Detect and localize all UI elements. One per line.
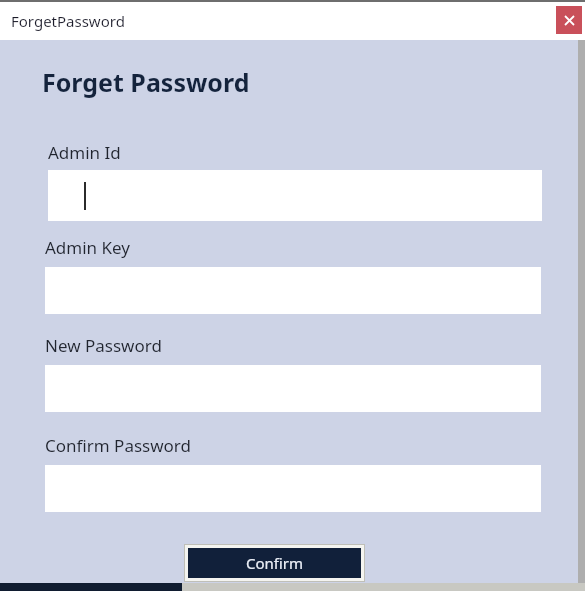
staticText: ForgetPassword (11, 11, 125, 31)
staticText: New Password (45, 334, 162, 357)
staticText: Confirm Password (45, 434, 191, 457)
staticText: Confirm (246, 553, 304, 573)
button[interactable]: Text input (48, 170, 542, 221)
staticText: Admin Id (48, 141, 121, 164)
staticText: Forget Password (42, 65, 250, 99)
staticText: Admin Key (45, 236, 130, 259)
button[interactable]: Close (556, 6, 582, 34)
button[interactable]: Confirm (188, 548, 361, 578)
